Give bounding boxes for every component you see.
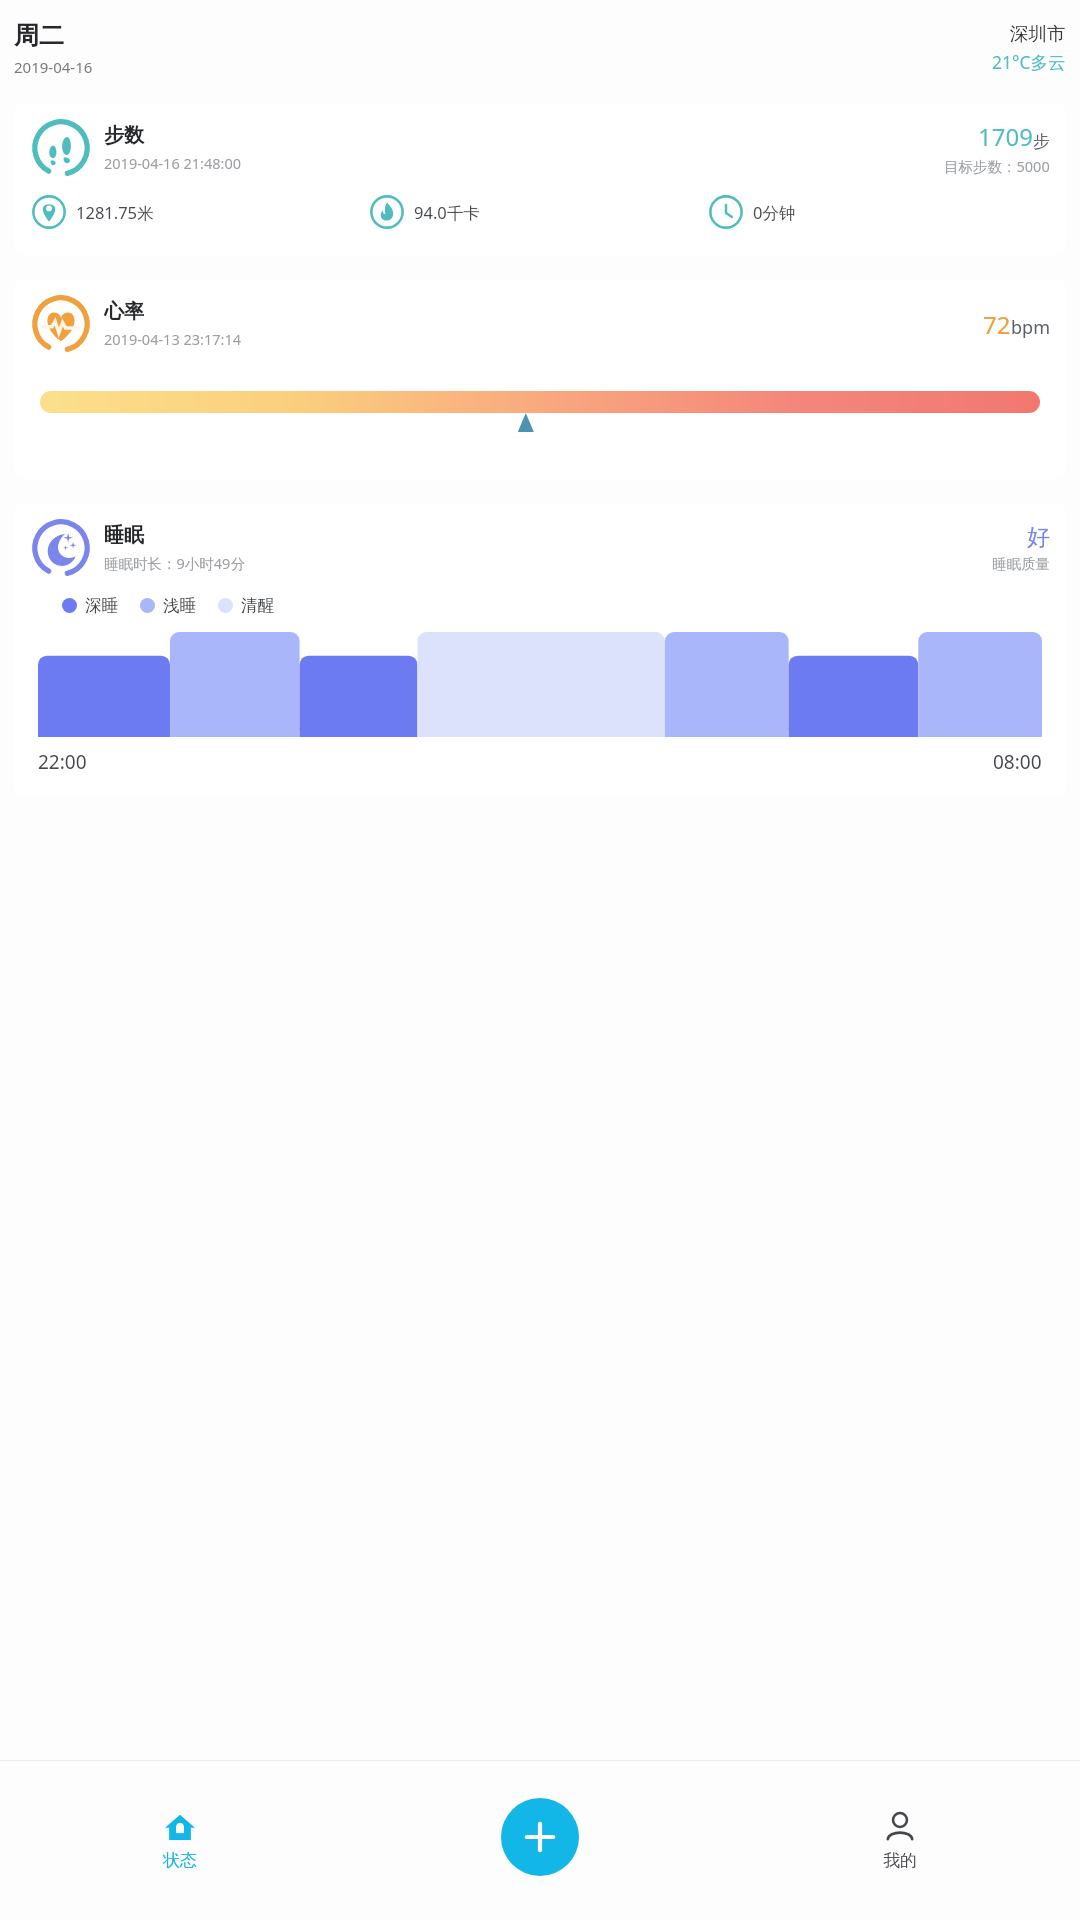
staticText: bpm [1011, 315, 1050, 340]
button[interactable]: 1281.75米 [32, 195, 370, 229]
staticText: 周二 [14, 20, 64, 51]
button[interactable]: 94.0千卡 [370, 195, 709, 229]
staticText: 0分钟 [753, 201, 796, 224]
button[interactable]: 状态 [0, 1760, 360, 1920]
staticText: 状态 [163, 1850, 197, 1871]
button[interactable]: 睡眠 [14, 503, 1066, 797]
staticText: 2019-04-16 21:48:00 [104, 153, 241, 173]
staticText: 2019-04-16 [14, 57, 93, 77]
button[interactable]: 我的 [720, 1760, 1080, 1920]
button[interactable]: 步数 [14, 103, 1066, 255]
staticText: 21°C多云 [992, 50, 1066, 74]
staticText: 我的 [883, 1850, 917, 1871]
button[interactable]: 0分钟 [709, 195, 1048, 229]
staticText: 08:00 [993, 749, 1042, 775]
staticText: 72 [983, 308, 1011, 341]
staticText: 1709 [978, 120, 1033, 153]
staticText: 步数 [104, 123, 144, 148]
staticText: 目标步数：5000 [944, 156, 1050, 176]
button[interactable]: Add [501, 1798, 579, 1876]
button[interactable]: 心率 [14, 279, 1066, 479]
staticText: 深睡 [85, 595, 118, 616]
staticText: 好 [1027, 523, 1050, 552]
staticText: 22:00 [38, 749, 87, 775]
staticText: 2019-04-13 23:17:14 [104, 329, 241, 349]
staticText: 94.0千卡 [414, 201, 480, 224]
staticText: 睡眠时长：9小时49分 [104, 553, 245, 573]
staticText: 睡眠 [104, 523, 144, 548]
staticText: 睡眠质量 [992, 555, 1050, 573]
staticText: 步 [1033, 131, 1050, 152]
staticText: 心率 [104, 299, 144, 324]
staticText: 1281.75米 [76, 201, 154, 224]
staticText: 浅睡 [163, 595, 196, 616]
staticText: 清醒 [241, 595, 274, 616]
staticText: 深圳市 [1010, 22, 1066, 45]
